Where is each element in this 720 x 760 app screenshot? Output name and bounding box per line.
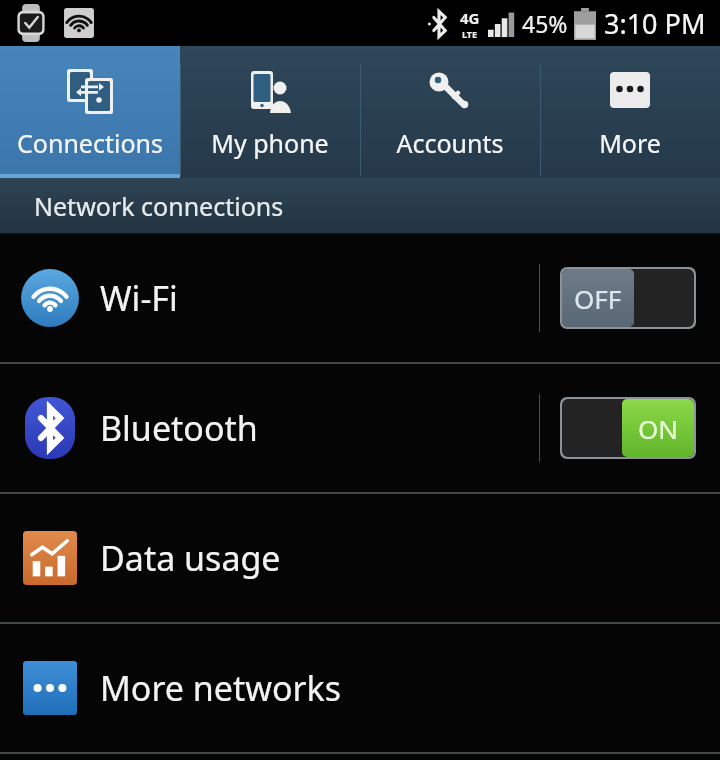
- staticText: Connections: [17, 126, 163, 160]
- button[interactable]: My phone: [180, 46, 360, 178]
- staticText: My phone: [211, 126, 329, 160]
- staticText: 4G: [460, 8, 480, 28]
- button[interactable]: More: [540, 46, 720, 178]
- staticText: LTE: [462, 28, 478, 40]
- staticText: ON: [638, 411, 679, 446]
- staticText: More: [599, 126, 661, 160]
- button[interactable]: Wi-Fi: [0, 234, 720, 362]
- staticText: 45%: [522, 8, 568, 39]
- staticText: OFF: [574, 281, 622, 316]
- button[interactable]: Connections: [0, 46, 180, 178]
- staticText: Network connections: [34, 189, 284, 223]
- staticText: 3:10 PM: [604, 5, 706, 42]
- staticText: Wi-Fi: [100, 275, 539, 321]
- other: On: [562, 399, 694, 457]
- button[interactable]: Accounts: [360, 46, 540, 178]
- other: Off: [562, 269, 694, 327]
- staticText: Accounts: [396, 126, 504, 160]
- staticText: More networks: [100, 665, 720, 711]
- staticText: Data usage: [100, 535, 720, 581]
- button[interactable]: Off: [560, 267, 696, 329]
- staticText: Bluetooth: [100, 405, 539, 451]
- button[interactable]: Bluetooth: [0, 364, 720, 492]
- button[interactable]: Data usage: [0, 494, 720, 622]
- button[interactable]: On: [560, 397, 696, 459]
- button[interactable]: More networks: [0, 624, 720, 752]
